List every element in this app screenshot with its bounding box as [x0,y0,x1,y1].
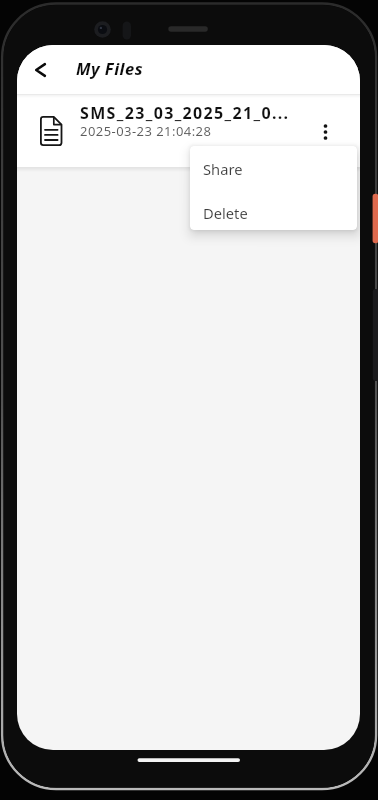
button[interactable]: SMS_23_03_2025_21_0... [17,95,360,167]
staticText: Share [203,159,243,179]
button[interactable]: Delete [190,190,357,230]
staticText: My Files [76,57,144,79]
staticText: 2025-03-23 21:04:28 [80,122,212,140]
button[interactable] [308,115,342,149]
staticText: Delete [203,203,248,223]
button[interactable]: Share [190,146,357,190]
button[interactable] [23,53,57,87]
staticText: SMS_23_03_2025_21_0... [80,102,290,124]
